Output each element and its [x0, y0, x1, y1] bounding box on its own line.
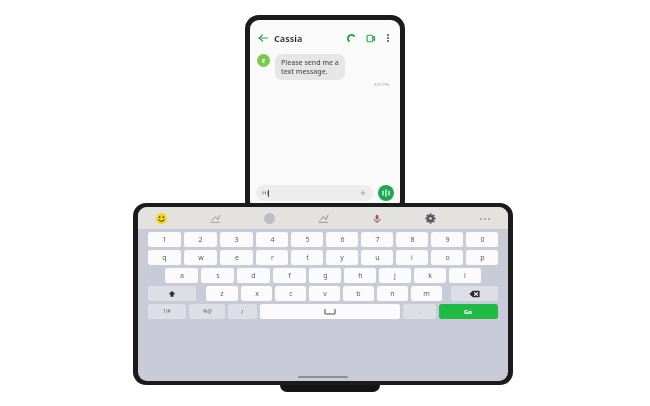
staticText: b	[356, 289, 361, 299]
button[interactable]: Video call	[363, 31, 377, 45]
button[interactable]: a	[165, 268, 198, 283]
staticText: q	[162, 253, 167, 263]
button[interactable]: 1!#	[148, 304, 186, 319]
staticText: 1!#	[163, 308, 171, 315]
staticText: a	[180, 271, 184, 281]
staticText: t	[306, 253, 309, 263]
button[interactable]: Stickers	[208, 211, 223, 226]
staticText: /	[241, 308, 244, 316]
button[interactable]: e	[220, 250, 253, 265]
button[interactable]: l	[449, 268, 481, 283]
button[interactable]: 5	[291, 232, 323, 247]
staticText: g	[323, 271, 328, 281]
button[interactable]: More	[477, 211, 492, 226]
staticText: Go	[464, 308, 473, 316]
staticText: m	[423, 289, 430, 299]
button[interactable]: 3	[220, 232, 253, 247]
staticText: Please send me a text message.	[281, 58, 339, 76]
staticText: k	[428, 271, 432, 281]
button[interactable]: GIF	[262, 211, 277, 226]
staticText: d	[251, 271, 256, 281]
button[interactable]: Settings	[423, 211, 438, 226]
button[interactable]: o	[431, 250, 463, 265]
button[interactable]: 2	[184, 232, 217, 247]
button[interactable]	[451, 286, 498, 301]
button[interactable]: Voice input	[369, 211, 384, 226]
button[interactable]: 1	[148, 232, 181, 247]
staticText: 9	[445, 235, 450, 245]
button[interactable]: r	[256, 250, 288, 265]
staticText: v	[323, 289, 327, 299]
button[interactable]: q	[148, 250, 181, 265]
staticText: s	[216, 271, 220, 281]
button[interactable]: b	[343, 286, 374, 301]
button[interactable]: w	[184, 250, 217, 265]
staticText: x	[255, 289, 259, 299]
button[interactable]: 0	[466, 232, 498, 247]
staticText: 0	[480, 235, 485, 245]
staticText: 6	[340, 235, 345, 245]
staticText: 1	[162, 235, 167, 245]
staticText: w	[198, 253, 204, 263]
staticText: %@	[203, 308, 212, 315]
button[interactable]: g	[309, 268, 341, 283]
staticText: 4:37 PM	[374, 82, 390, 87]
button[interactable]: j	[379, 268, 411, 283]
button[interactable]: x	[241, 286, 272, 301]
button[interactable]: Emoji	[154, 211, 169, 226]
staticText: r	[271, 253, 274, 263]
button[interactable]: %@	[189, 304, 225, 319]
button[interactable]: f	[273, 268, 306, 283]
staticText: .	[419, 308, 421, 316]
staticText: 5	[305, 235, 310, 245]
button[interactable]: m	[411, 286, 442, 301]
button[interactable]: 8	[396, 232, 428, 247]
button[interactable]: v	[309, 286, 340, 301]
staticText: c	[289, 289, 293, 299]
button[interactable]: y	[326, 250, 358, 265]
button[interactable]	[260, 304, 400, 319]
staticText: Cassia	[274, 32, 303, 44]
staticText: y	[340, 253, 344, 263]
button[interactable]: 9	[431, 232, 463, 247]
button[interactable]: z	[206, 286, 238, 301]
staticText: z	[220, 289, 224, 299]
button[interactable]: k	[414, 268, 446, 283]
button[interactable]: Send	[378, 185, 394, 201]
button[interactable]: 7	[361, 232, 393, 247]
button[interactable]: More options	[382, 32, 394, 44]
button[interactable]: Handwriting	[316, 211, 331, 226]
staticText: e	[235, 253, 239, 263]
staticText: u	[375, 253, 380, 263]
button[interactable]: /	[228, 304, 257, 319]
staticText: n	[390, 289, 395, 299]
button[interactable]: h	[344, 268, 376, 283]
button[interactable]: Call	[344, 31, 358, 45]
button[interactable]: Back	[256, 31, 270, 45]
button[interactable]: p	[466, 250, 498, 265]
staticText: E	[262, 57, 266, 65]
staticText: o	[445, 253, 450, 263]
button[interactable]: s	[201, 268, 234, 283]
button[interactable]: i	[396, 250, 428, 265]
staticText: 8	[410, 235, 415, 245]
button[interactable]: n	[377, 286, 408, 301]
staticText: 4	[270, 235, 275, 245]
button[interactable]: 6	[326, 232, 358, 247]
staticText: 3	[234, 235, 239, 245]
staticText: p	[480, 253, 485, 263]
button[interactable]: Go	[439, 304, 498, 319]
staticText: 7	[375, 235, 380, 245]
button[interactable]: d	[237, 268, 270, 283]
button[interactable]: Hi	[256, 185, 373, 201]
staticText: h	[358, 271, 363, 281]
button[interactable]: u	[361, 250, 393, 265]
button[interactable]: t	[291, 250, 323, 265]
button[interactable]	[148, 286, 196, 301]
button[interactable]: c	[275, 286, 306, 301]
staticText: 2	[198, 235, 203, 245]
button[interactable]: 4	[256, 232, 288, 247]
staticText: i	[411, 253, 413, 263]
staticText: j	[394, 271, 396, 281]
